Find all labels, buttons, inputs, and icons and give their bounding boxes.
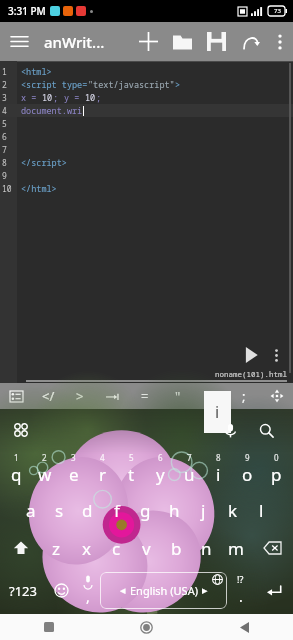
button[interactable]: a: [17, 491, 45, 529]
button[interactable]: </: [32, 383, 64, 409]
button[interactable]: v: [131, 529, 161, 567]
staticText: ;: [96, 92, 102, 104]
staticText: l: [259, 499, 264, 522]
staticText: 10: [85, 92, 96, 104]
staticText: h: [169, 499, 180, 522]
staticText: i: [215, 401, 220, 423]
button[interactable]: Home: [97, 614, 195, 640]
button[interactable]: Move cursor: [260, 383, 293, 409]
button[interactable]: d: [73, 491, 102, 529]
button[interactable]: j: [189, 491, 218, 529]
button[interactable]: Menu: [0, 22, 38, 61]
button[interactable]: Save: [199, 22, 233, 61]
staticText: <html>: [21, 66, 52, 78]
button[interactable]: 8: [204, 451, 233, 491]
staticText: 10: [42, 92, 53, 104]
button[interactable]: !?: [227, 567, 254, 614]
button[interactable]: Keyboard layout: [0, 383, 32, 409]
staticText: 3:31 PM: [8, 4, 46, 18]
button[interactable]: More options: [267, 22, 293, 61]
button[interactable]: Run: [237, 341, 265, 369]
button[interactable]: 7: [175, 451, 204, 491]
button[interactable]: Clipboard: [10, 419, 32, 441]
staticText: </script>: [21, 157, 67, 169]
staticText: x: [82, 537, 91, 560]
button[interactable]: Search: [255, 419, 277, 441]
button[interactable]: &: [194, 383, 227, 409]
button[interactable]: n: [191, 529, 221, 567]
button[interactable]: Comma and voice: [76, 567, 100, 614]
staticText: m: [228, 537, 244, 560]
staticText: w: [38, 463, 52, 486]
staticText: f: [114, 499, 120, 522]
button[interactable]: Tab: [96, 383, 128, 409]
button[interactable]: 9: [233, 451, 262, 491]
button[interactable]: g: [131, 491, 160, 529]
button[interactable]: ;: [227, 383, 260, 409]
staticText: 7: [2, 144, 7, 155]
staticText: i: [216, 463, 221, 486]
staticText: >: [76, 387, 84, 405]
button[interactable]: Voice input: [219, 419, 241, 441]
staticText: 2: [2, 79, 7, 90]
button[interactable]: i: [204, 391, 231, 433]
button[interactable]: 1: [2, 451, 30, 491]
staticText: ?123: [9, 582, 37, 600]
staticText: j: [201, 499, 206, 522]
staticText: q: [11, 463, 22, 486]
button[interactable]: 6: [146, 451, 175, 491]
staticText: document.wri: [21, 105, 83, 117]
staticText: </: [42, 387, 55, 405]
button[interactable]: x: [71, 529, 101, 567]
button[interactable]: Editor options: [265, 344, 287, 366]
button[interactable]: Undo: [233, 22, 267, 61]
staticText: ,: [86, 587, 90, 606]
staticText: 9: [2, 170, 7, 181]
button[interactable]: Shift: [0, 529, 41, 567]
staticText: b: [171, 537, 182, 560]
button[interactable]: k: [218, 491, 247, 529]
staticText: x =: [21, 92, 42, 104]
button[interactable]: Add: [131, 22, 165, 61]
staticText: 2: [42, 452, 47, 463]
button[interactable]: 5: [117, 451, 146, 491]
button[interactable]: f: [102, 491, 131, 529]
button[interactable]: Recents: [0, 614, 97, 640]
button[interactable]: m: [221, 529, 251, 567]
staticText: 1: [14, 452, 19, 463]
staticText: <script type=: [21, 79, 88, 91]
button[interactable]: Open folder: [165, 22, 199, 61]
button[interactable]: h: [160, 491, 189, 529]
button[interactable]: 2: [30, 451, 59, 491]
button[interactable]: Enter: [254, 567, 293, 614]
button[interactable]: ?123: [0, 567, 46, 614]
button[interactable]: =: [128, 383, 161, 409]
staticText: y: [156, 463, 165, 486]
button[interactable]: 0: [262, 451, 291, 491]
button[interactable]: b: [161, 529, 191, 567]
staticText: 4: [2, 105, 7, 116]
button[interactable]: l: [247, 491, 276, 529]
staticText: 10: [2, 183, 12, 194]
staticText: g: [140, 499, 151, 522]
staticText: 6: [158, 452, 163, 463]
staticText: 9: [245, 452, 250, 463]
button[interactable]: ◀: [100, 572, 227, 609]
button[interactable]: 4: [88, 451, 117, 491]
button[interactable]: >: [64, 383, 96, 409]
button[interactable]: Emoji: [46, 567, 76, 614]
button[interactable]: s: [45, 491, 73, 529]
button[interactable]: Back: [195, 614, 293, 640]
staticText: ;: [53, 92, 64, 104]
staticText: 73: [274, 7, 281, 15]
staticText: y =: [64, 92, 85, 104]
button[interactable]: anWrit...: [38, 32, 105, 52]
button[interactable]: z: [41, 529, 71, 567]
button[interactable]: c: [101, 529, 131, 567]
staticText: ▶: [202, 587, 208, 595]
staticText: o: [242, 463, 253, 486]
button[interactable]: Backspace: [251, 529, 293, 567]
button[interactable]: 3: [59, 451, 88, 491]
staticText: 1: [2, 66, 7, 77]
button[interactable]: ": [161, 383, 194, 409]
